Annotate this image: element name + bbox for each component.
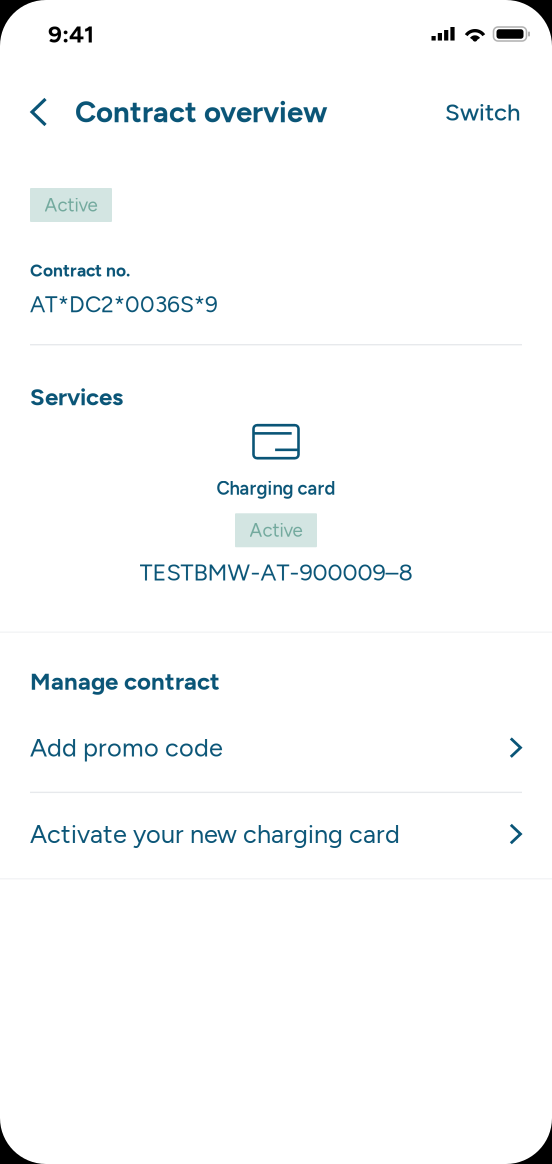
- staticText: Services: [30, 382, 123, 411]
- staticText: 9:41: [48, 20, 94, 48]
- staticText: Active: [249, 519, 302, 541]
- staticText: TESTBMW-AT-900009–8: [139, 558, 412, 586]
- staticText: Contract no.: [30, 260, 130, 281]
- button[interactable]: Switch: [427, 68, 552, 156]
- staticText: Switch: [445, 98, 520, 126]
- button[interactable]: Activate your new charging card: [0, 812, 552, 856]
- staticText: Add promo code: [30, 732, 223, 763]
- staticText: Contract overview: [75, 94, 327, 130]
- staticText: Manage contract: [30, 667, 220, 696]
- staticText: Activate your new charging card: [30, 819, 400, 849]
- staticText: AT*DC2*0036S*9: [30, 291, 218, 318]
- button[interactable]: Add promo code: [0, 726, 552, 770]
- button[interactable]: Back: [0, 68, 75, 156]
- staticText: Active: [44, 194, 97, 216]
- staticText: Charging card: [216, 477, 335, 499]
